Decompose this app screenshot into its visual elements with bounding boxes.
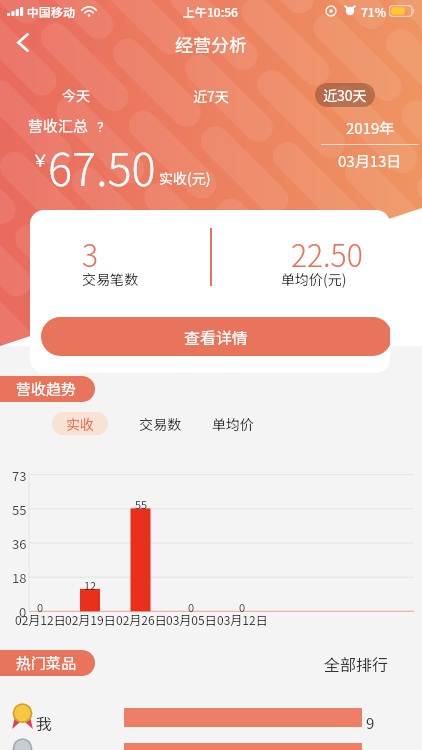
staticText: 中国移动 <box>27 3 76 20</box>
staticText: 03月12日 <box>217 611 268 628</box>
staticText: 0 <box>19 602 27 621</box>
button[interactable]: 近7天 <box>185 84 237 108</box>
button[interactable]: 饭饭 <box>0 737 422 750</box>
staticText: 2019年 <box>346 117 395 139</box>
staticText: ？ <box>97 117 111 136</box>
staticText: 上午10:56 <box>183 3 238 20</box>
staticText: 近7天 <box>193 86 229 106</box>
staticText: 实收(元) <box>159 168 211 188</box>
staticText: 3 <box>82 232 99 275</box>
staticText: 近30天 <box>323 85 367 105</box>
staticText: 全部排行 <box>324 652 389 675</box>
staticText: 单均价(元) <box>281 269 347 289</box>
button[interactable]: Back <box>4 23 42 61</box>
staticText: 18 <box>12 568 27 587</box>
button[interactable]: 我 <box>0 702 422 733</box>
staticText: 22.50 <box>291 232 363 275</box>
button[interactable]: 营收汇总 <box>28 115 111 137</box>
staticText: 73 <box>12 466 27 485</box>
button[interactable]: 单均价 <box>207 412 259 435</box>
staticText: ￥ <box>32 147 49 172</box>
button[interactable]: 交易数 <box>134 412 186 435</box>
staticText: 我 <box>36 711 53 734</box>
staticText: 0 <box>188 599 195 615</box>
staticText: 单均价 <box>212 414 254 434</box>
staticText: 03月05日 <box>166 611 217 628</box>
staticText: 实收 <box>66 414 94 434</box>
button[interactable]: 今天 <box>52 83 100 107</box>
staticText: 0 <box>37 599 44 615</box>
staticText: 热门菜品 <box>16 652 77 674</box>
staticText: 0 <box>239 599 246 615</box>
staticText: 67.50 <box>48 134 156 199</box>
button[interactable]: 营收趋势 <box>0 376 95 402</box>
button[interactable]: 近30天 <box>315 83 375 107</box>
staticText: 交易笔数 <box>82 269 138 289</box>
button[interactable]: 全部排行 <box>310 648 402 678</box>
staticText: 交易数 <box>139 414 181 434</box>
staticText: 今天 <box>62 85 90 105</box>
staticText: 36 <box>12 534 27 553</box>
button[interactable]: 实收 <box>52 412 108 435</box>
staticText: 55 <box>135 496 148 512</box>
staticText: 55 <box>12 500 27 519</box>
staticText: 经营分析 <box>175 31 247 57</box>
staticText: 营收趋势 <box>16 378 77 400</box>
button[interactable]: 热门菜品 <box>0 650 95 676</box>
staticText: 营收汇总 <box>28 115 89 137</box>
staticText: 12 <box>84 577 97 593</box>
staticText: 9 <box>366 712 375 734</box>
staticText: 71% <box>361 3 386 20</box>
staticText: 查看详情 <box>184 325 249 348</box>
button[interactable]: 查看详情 <box>41 317 390 356</box>
staticText: 03月13日 <box>338 150 402 172</box>
staticText: 02月19日 <box>65 611 116 628</box>
staticText: 02月12日 <box>15 611 66 628</box>
staticText: 02月26日 <box>116 611 167 628</box>
